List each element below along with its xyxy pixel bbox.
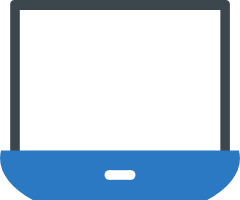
button[interactable]: Laptop computer [0,0,240,200]
